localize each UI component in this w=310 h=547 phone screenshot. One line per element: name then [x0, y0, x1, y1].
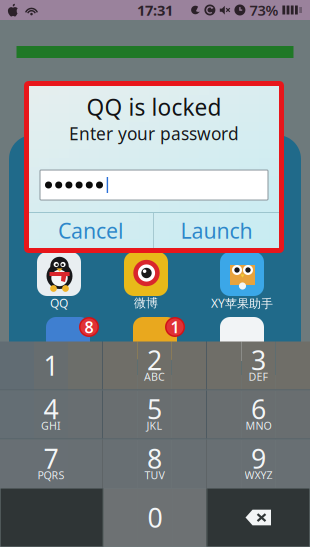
staticText: 1 [170, 316, 179, 338]
staticText: TUV [144, 468, 164, 482]
staticText: 73% [249, 0, 278, 20]
staticText: 4 [43, 391, 58, 427]
staticText: Enter your password [69, 122, 239, 145]
staticText: MNO [245, 418, 271, 433]
button[interactable]: 6 [207, 390, 310, 438]
button[interactable]: 7 [0, 439, 102, 488]
button[interactable]: 3 [207, 341, 310, 389]
staticText: ABC [144, 369, 165, 384]
staticText: XY苹果助手 [211, 295, 273, 311]
staticText: 1 [43, 348, 58, 383]
button[interactable]: 8 [103, 439, 206, 488]
staticText: 7 [43, 441, 58, 476]
button[interactable]: Cancel [29, 213, 153, 248]
staticText: 8 [84, 316, 93, 338]
staticText: WXYZ [244, 468, 272, 482]
staticText: QQ [50, 295, 68, 311]
staticText: 17:31 [137, 0, 173, 20]
staticText: Launch [180, 216, 252, 245]
staticText: 6 [251, 391, 266, 427]
staticText: 2 [147, 342, 162, 378]
staticText: 0 [147, 500, 162, 535]
staticText: 微博 [134, 296, 158, 310]
staticText: 9 [251, 441, 266, 476]
staticText: GHI [41, 418, 61, 433]
button[interactable]: 4 [0, 390, 102, 438]
staticText: 3 [251, 342, 266, 378]
staticText: QQ is locked [86, 92, 221, 122]
button[interactable]: 9 [207, 439, 310, 488]
staticText: Cancel [58, 216, 124, 245]
staticText: 8 [147, 441, 162, 476]
staticText: DEF [248, 369, 268, 384]
button[interactable]: 5 [103, 390, 206, 438]
button[interactable]: Delete [207, 488, 309, 546]
button[interactable]: 0 [103, 488, 206, 546]
staticText: JKL [146, 418, 162, 433]
button[interactable]: Launch [154, 213, 279, 248]
staticText: 5 [147, 391, 162, 427]
staticText: PQRS [37, 468, 64, 482]
button[interactable]: 2 [103, 341, 206, 389]
button[interactable]: 1 [0, 341, 102, 389]
